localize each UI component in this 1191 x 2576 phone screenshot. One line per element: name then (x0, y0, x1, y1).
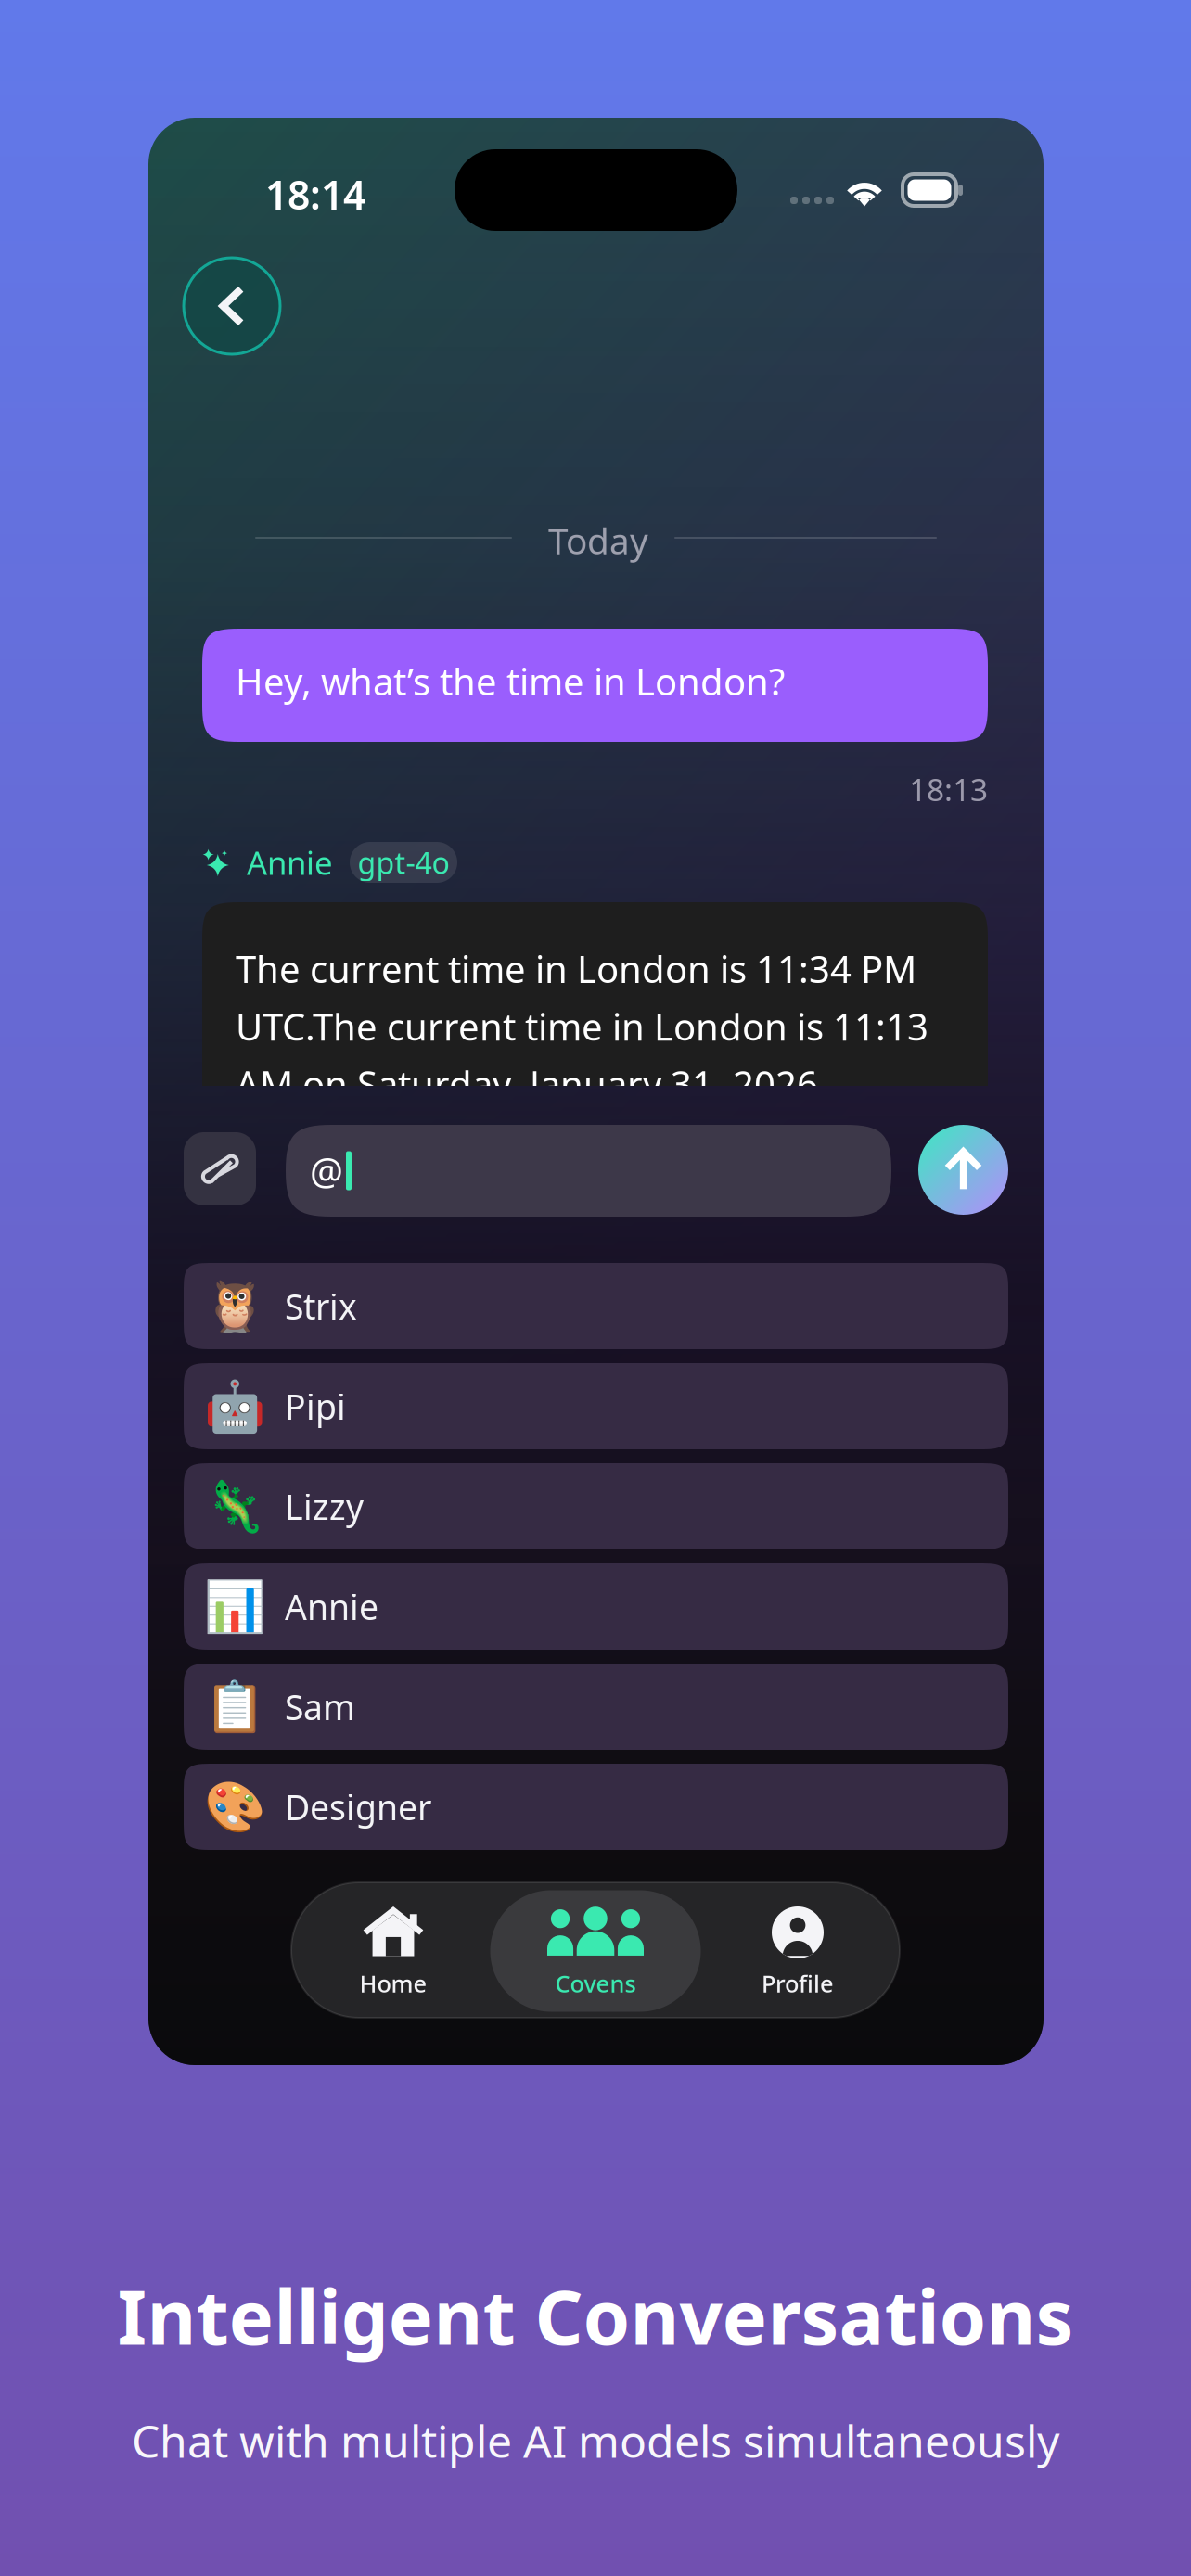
button[interactable]: 🎨 (184, 1764, 1008, 1850)
button[interactable]: 🦉 (184, 1263, 1008, 1349)
button[interactable]: Back (184, 258, 280, 354)
button[interactable]: Home (299, 1882, 488, 2018)
staticText: Designer (285, 1784, 431, 1830)
staticText: Lizzy (285, 1483, 364, 1529)
staticText: gpt-4o (358, 843, 449, 882)
button[interactable]: Covens (490, 1882, 701, 2018)
staticText: Chat with multiple AI models simultaneou… (132, 2411, 1059, 2470)
staticText: 🦉 (204, 1278, 265, 1334)
button[interactable]: 📋 (184, 1664, 1008, 1750)
button[interactable]: Profile (703, 1882, 892, 2018)
button[interactable]: 🤖 (184, 1363, 1008, 1449)
staticText: Home (359, 1968, 427, 1999)
staticText: Strix (285, 1283, 357, 1329)
staticText: Annie (247, 841, 333, 884)
staticText: 📋 (204, 1678, 265, 1735)
button[interactable]: 🦎 (184, 1463, 1008, 1549)
button[interactable]: @ (286, 1125, 891, 1217)
button[interactable]: Attach (184, 1132, 256, 1205)
staticText: The current time in London is 11:34 PM U… (236, 944, 928, 1108)
staticText: Today (548, 516, 648, 564)
staticText: Pipi (285, 1383, 346, 1429)
staticText: 📊 (204, 1578, 265, 1635)
button[interactable]: Send (918, 1125, 1008, 1215)
staticText: 18:14 (265, 168, 365, 220)
staticText: @ (310, 1146, 343, 1195)
staticText: 18:13 (909, 769, 988, 810)
staticText: 🤖 (204, 1378, 265, 1434)
staticText: Sam (285, 1684, 355, 1730)
staticText: 🎨 (204, 1779, 265, 1835)
staticText: Covens (555, 1968, 636, 1999)
staticText: Intelligent Conversations (117, 2265, 1074, 2366)
staticText: Hey, what’s the time in London? (236, 656, 785, 706)
button[interactable]: 📊 (184, 1563, 1008, 1650)
staticText: Profile (762, 1968, 834, 1999)
staticText: Annie (285, 1584, 378, 1630)
staticText: 🦎 (204, 1478, 265, 1535)
